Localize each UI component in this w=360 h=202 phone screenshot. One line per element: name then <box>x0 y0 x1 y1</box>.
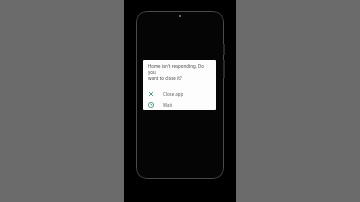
staticText: Close app <box>163 91 184 97</box>
button[interactable]: Wait <box>143 100 216 110</box>
staticText: Wait <box>163 102 173 108</box>
staticText: Home isn't responding. Do you want to cl… <box>148 63 212 81</box>
other: Wait <box>148 102 154 108</box>
other: Close app <box>148 91 154 97</box>
button[interactable]: Close app <box>143 87 216 100</box>
